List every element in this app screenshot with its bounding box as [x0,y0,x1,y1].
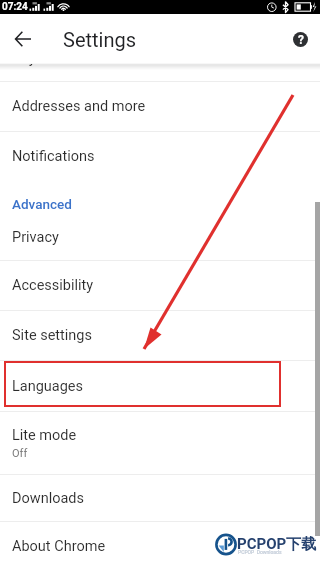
staticText: About Chrome [12,538,106,555]
staticText: ? [298,33,304,47]
button[interactable]: Privacy [0,215,320,260]
staticText: Accessibility [12,277,94,294]
staticText: 07:24 [2,1,28,13]
button[interactable]: Addresses and more [0,82,320,131]
staticText: Lite mode [12,427,77,444]
button[interactable]: About Chrome [0,522,320,571]
staticText: PCPOP Downloads [238,549,282,555]
button[interactable]: Notifications [0,132,320,181]
staticText: Payment methods [12,50,130,67]
button[interactable]: Back [7,23,39,55]
staticText: Addresses and more [12,98,146,115]
staticText: Notifications [12,148,95,165]
staticText: Languages [12,378,84,395]
staticText: Downloads [12,490,85,507]
button[interactable]: Site settings [0,311,320,360]
button[interactable]: Help [286,25,314,53]
button[interactable]: Lite mode [0,412,320,474]
staticText: Settings [63,28,137,51]
staticText: Advanced [12,196,72,212]
staticText: Off [12,447,28,460]
button[interactable]: Payment methods [0,31,320,81]
staticText: PCPOP下载 [237,535,317,554]
button[interactable]: Languages [0,361,320,411]
staticText: Privacy [12,229,59,246]
staticText: Site settings [12,327,92,344]
button[interactable]: Downloads [0,475,320,521]
button[interactable]: Advanced [0,181,320,215]
button[interactable]: Accessibility [0,261,320,310]
